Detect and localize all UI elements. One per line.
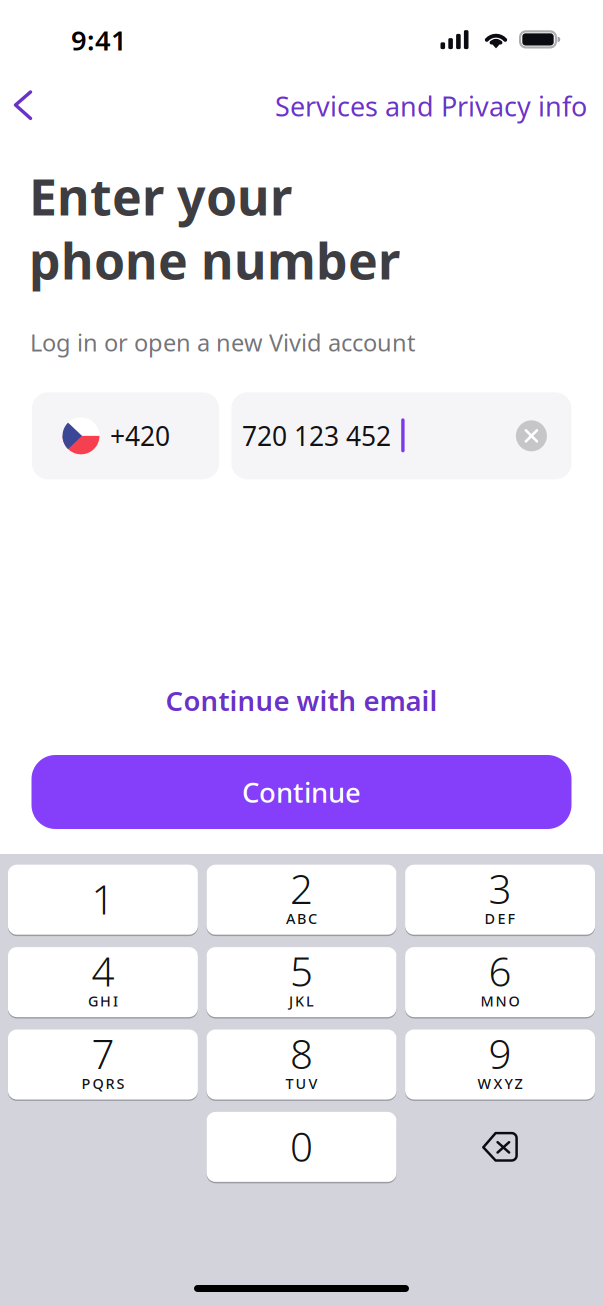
button[interactable]: 3 — [405, 864, 595, 935]
staticText: A B C — [286, 909, 317, 928]
staticText: Continue — [242, 773, 361, 811]
button[interactable]: Delete — [405, 1111, 595, 1183]
button[interactable]: 6 — [405, 946, 595, 1018]
staticText: Enter your — [29, 162, 292, 230]
button[interactable]: Services and Privacy info — [271, 80, 591, 132]
staticText: Log in or open a new Vivid account — [30, 326, 416, 358]
staticText: G H I — [88, 991, 118, 1011]
staticText: 720 123 452 — [242, 418, 391, 454]
staticText: J K L — [289, 991, 314, 1011]
button[interactable]: 4 — [8, 946, 198, 1018]
staticText: 3 — [489, 861, 512, 916]
staticText: +420 — [110, 418, 170, 454]
staticText: T U V — [285, 1073, 317, 1093]
button[interactable]: Back — [0, 78, 56, 132]
button[interactable]: 5 — [206, 946, 396, 1018]
button[interactable]: +420 — [32, 392, 219, 479]
staticText: 8 — [290, 1026, 313, 1081]
staticText: 1 — [91, 872, 114, 926]
staticText: phone number — [29, 226, 400, 294]
staticText: W X Y Z — [478, 1073, 523, 1093]
button[interactable]: 720 123 452 — [231, 392, 571, 479]
button[interactable]: 7 — [8, 1029, 198, 1100]
staticText: 9:41 — [71, 21, 127, 58]
button[interactable]: 2 — [206, 864, 396, 935]
staticText: M N O — [481, 991, 520, 1011]
staticText: 4 — [91, 943, 114, 998]
button[interactable]: 1 — [8, 864, 198, 935]
staticText: P Q R S — [81, 1073, 124, 1093]
button[interactable]: Continue — [31, 755, 571, 829]
staticText: 9 — [489, 1026, 512, 1081]
staticText: Services and Privacy info — [275, 88, 587, 124]
button[interactable]: Continue with email — [157, 674, 445, 727]
button[interactable]: 8 — [206, 1029, 396, 1100]
staticText: Continue with email — [165, 682, 437, 719]
staticText: 6 — [489, 943, 512, 998]
button[interactable]: 0 — [206, 1111, 396, 1183]
button[interactable]: 9 — [405, 1029, 595, 1100]
staticText: 5 — [290, 943, 313, 998]
staticText: 2 — [290, 861, 313, 916]
staticText: 7 — [91, 1026, 114, 1081]
staticText: D E F — [485, 909, 516, 928]
staticText: 0 — [290, 1119, 313, 1174]
